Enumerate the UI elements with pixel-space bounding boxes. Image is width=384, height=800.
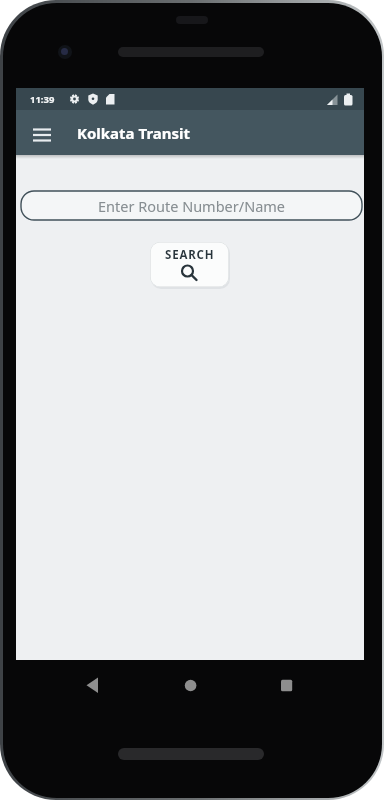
staticText: 11:39 [30,93,55,106]
staticText: SEARCH [165,247,215,263]
staticText: Kolkata Transit [77,123,191,143]
staticText: Enter Route Number/Name [98,196,286,216]
